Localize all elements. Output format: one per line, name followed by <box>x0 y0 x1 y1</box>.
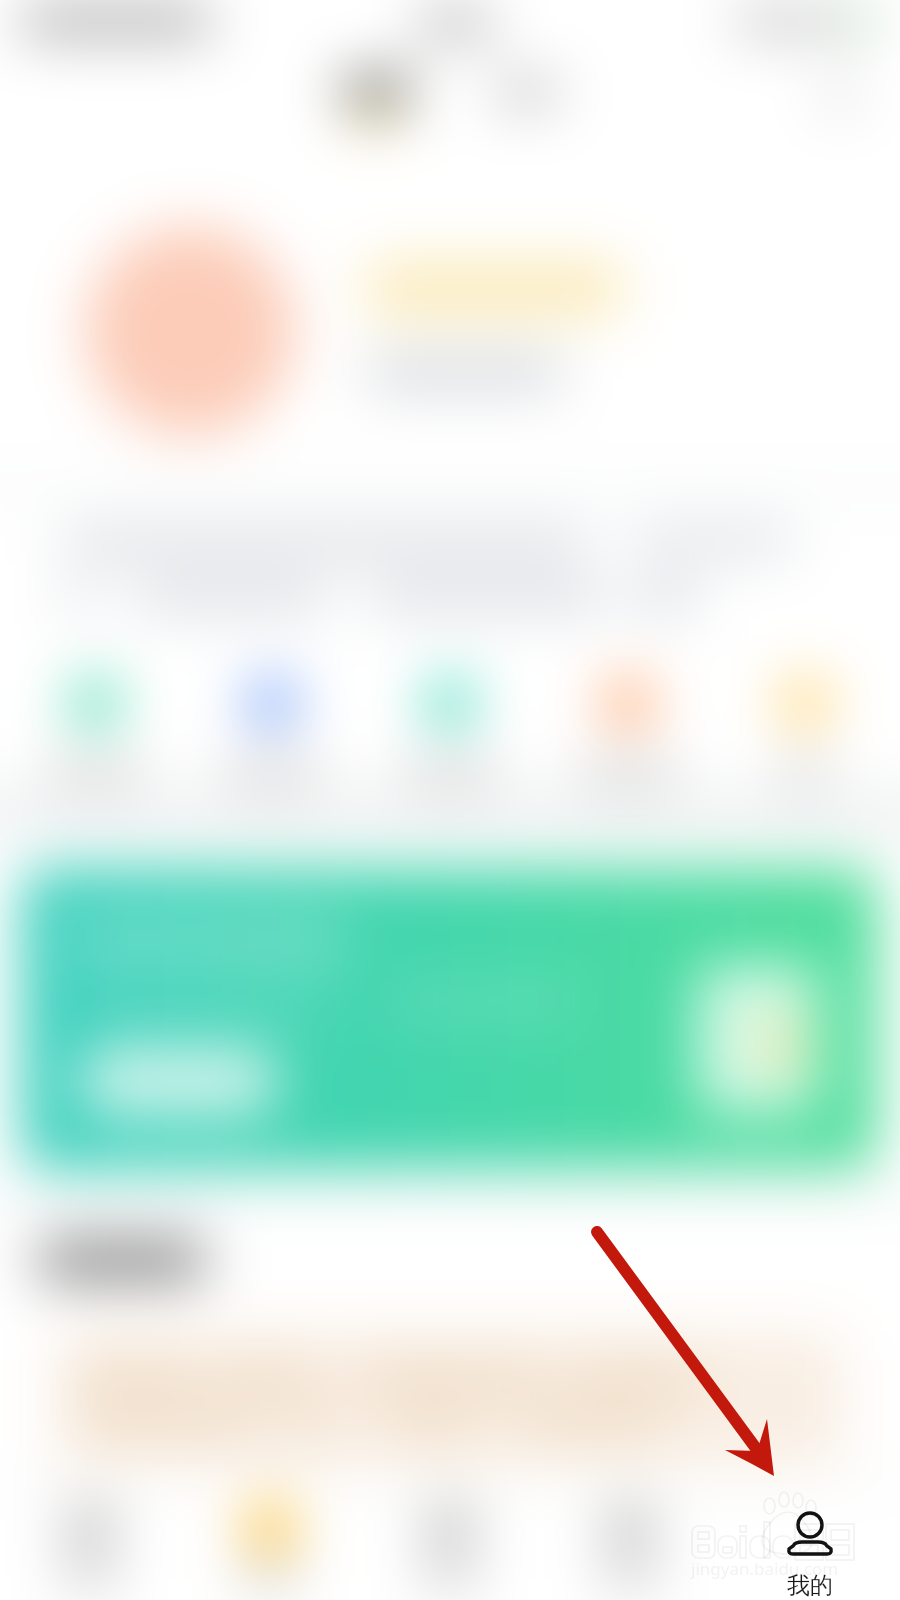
staticText: 我的 <box>787 1571 833 1600</box>
staticText: jingyan.baidu.com <box>691 1557 839 1580</box>
other: 我的 <box>786 1510 834 1558</box>
button[interactable]: 我的 <box>750 1510 870 1600</box>
